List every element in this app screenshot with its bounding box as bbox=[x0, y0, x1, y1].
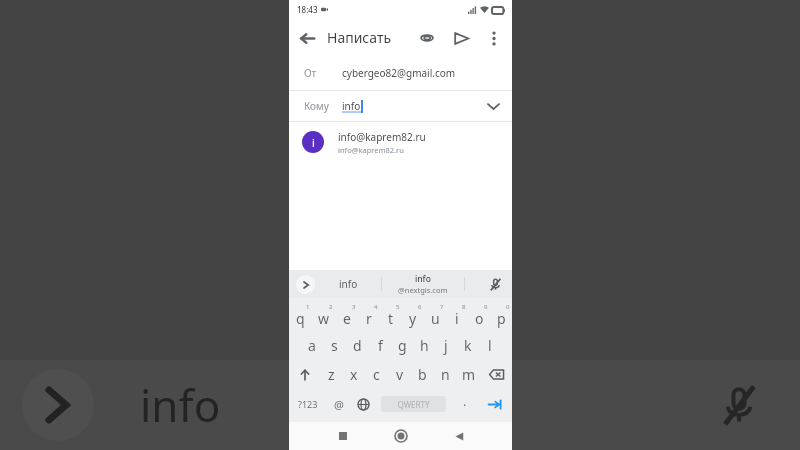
staticText: a bbox=[308, 336, 316, 355]
staticText: 3 bbox=[352, 303, 356, 311]
staticText: y bbox=[409, 309, 417, 328]
staticText: info bbox=[415, 273, 431, 285]
staticText: v bbox=[396, 365, 404, 384]
button[interactable]: info bbox=[315, 270, 381, 298]
staticText: k bbox=[464, 336, 472, 355]
staticText: ?123 bbox=[298, 398, 318, 410]
button[interactable]: Attach file bbox=[410, 21, 444, 55]
button[interactable]: d bbox=[346, 331, 369, 360]
staticText: . bbox=[463, 392, 467, 410]
staticText: 8 bbox=[462, 303, 466, 311]
staticText: 5 bbox=[396, 303, 400, 311]
button[interactable]: i bbox=[289, 122, 512, 162]
staticText: 7 bbox=[440, 303, 444, 311]
staticText: r bbox=[366, 309, 372, 328]
staticText: s bbox=[331, 336, 338, 355]
staticText: info bbox=[339, 277, 358, 291]
button[interactable]: t bbox=[380, 301, 402, 331]
button[interactable]: v bbox=[388, 360, 411, 389]
staticText: g bbox=[398, 336, 407, 355]
staticText: i bbox=[312, 135, 315, 150]
staticText: n bbox=[441, 365, 450, 384]
staticText: j bbox=[444, 336, 448, 355]
button[interactable]: Voice input off bbox=[482, 271, 508, 297]
button[interactable]: a bbox=[300, 331, 323, 360]
staticText: o bbox=[475, 309, 484, 328]
staticText: От bbox=[304, 66, 342, 80]
staticText: w bbox=[318, 309, 330, 328]
button[interactable]: От bbox=[289, 56, 512, 90]
staticText: f bbox=[378, 336, 383, 355]
staticText: m bbox=[462, 365, 476, 384]
button[interactable]: x bbox=[342, 360, 365, 389]
button[interactable]: y bbox=[402, 301, 424, 331]
button[interactable]: g bbox=[391, 331, 413, 360]
staticText: h bbox=[420, 336, 429, 355]
button[interactable]: info bbox=[382, 270, 464, 298]
staticText: i bbox=[455, 309, 459, 328]
button[interactable]: More options bbox=[478, 22, 510, 54]
staticText: 4 bbox=[374, 303, 378, 311]
button[interactable]: @ bbox=[327, 389, 351, 419]
button[interactable]: Expand recipients bbox=[478, 91, 508, 121]
staticText: x bbox=[350, 365, 358, 384]
button[interactable]: b bbox=[411, 360, 434, 389]
button[interactable]: r bbox=[358, 301, 380, 331]
staticText: info@kaprem82.ru bbox=[338, 130, 426, 144]
staticText: @ bbox=[334, 397, 344, 412]
staticText: l bbox=[488, 336, 492, 355]
button[interactable]: w bbox=[312, 301, 335, 331]
button[interactable]: n bbox=[434, 360, 457, 389]
button[interactable]: ?123 bbox=[289, 389, 327, 419]
staticText: Кому bbox=[304, 99, 342, 113]
staticText: t bbox=[388, 309, 394, 328]
button[interactable]: Back bbox=[289, 20, 325, 56]
button[interactable]: s bbox=[323, 331, 346, 360]
staticText: info bbox=[342, 99, 361, 113]
staticText: Написать bbox=[327, 28, 392, 47]
staticText: @nextgis.com bbox=[398, 285, 448, 295]
staticText: p bbox=[497, 309, 506, 328]
button[interactable]: z bbox=[320, 360, 342, 389]
staticText: z bbox=[328, 365, 335, 384]
button[interactable]: QWERTY bbox=[381, 396, 446, 412]
staticText: c bbox=[373, 365, 380, 384]
button[interactable]: o bbox=[468, 301, 490, 331]
staticText: 0 bbox=[506, 303, 510, 311]
button[interactable]: Home bbox=[383, 422, 419, 450]
staticText: u bbox=[431, 309, 440, 328]
staticText: QWERTY bbox=[397, 399, 430, 410]
button[interactable]: u bbox=[424, 301, 446, 331]
button[interactable]: Backspace bbox=[480, 360, 512, 389]
button[interactable]: m bbox=[457, 360, 480, 389]
button[interactable]: Shift bbox=[289, 360, 320, 389]
button[interactable]: Send bbox=[444, 21, 478, 55]
staticText: e bbox=[343, 309, 351, 328]
button[interactable]: Recent apps bbox=[325, 422, 361, 450]
button[interactable]: Кому bbox=[289, 91, 512, 121]
button[interactable]: . bbox=[452, 389, 478, 419]
staticText: 2 bbox=[329, 303, 333, 311]
button[interactable]: Change language bbox=[351, 389, 375, 419]
button[interactable]: q bbox=[289, 301, 312, 331]
staticText: d bbox=[353, 336, 362, 355]
button[interactable]: l bbox=[479, 331, 501, 360]
staticText: cybergeo82@gmail.com bbox=[342, 66, 456, 80]
staticText: info@kaprem82.ru bbox=[338, 145, 404, 155]
button[interactable]: f bbox=[369, 331, 391, 360]
button[interactable]: k bbox=[457, 331, 479, 360]
staticText: 6 bbox=[418, 303, 422, 311]
staticText: 9 bbox=[484, 303, 488, 311]
button[interactable]: e bbox=[335, 301, 358, 331]
button[interactable]: Next field bbox=[478, 389, 512, 419]
button[interactable]: j bbox=[435, 331, 457, 360]
button[interactable]: c bbox=[365, 360, 388, 389]
staticText: info bbox=[140, 375, 221, 435]
button[interactable]: Back bbox=[441, 422, 477, 450]
button[interactable]: p bbox=[490, 301, 512, 331]
button[interactable]: Expand suggestions bbox=[296, 275, 315, 294]
button[interactable]: h bbox=[413, 331, 435, 360]
staticText: 18:43 bbox=[297, 4, 318, 15]
button[interactable]: i bbox=[446, 301, 468, 331]
staticText: q bbox=[296, 309, 305, 328]
